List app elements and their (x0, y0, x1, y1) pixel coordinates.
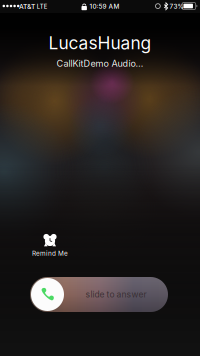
staticText: slide to answer (85, 289, 146, 300)
staticText: LucasHuang (48, 32, 151, 53)
staticText: 73% (169, 2, 183, 10)
button[interactable]: slide to answer (30, 277, 168, 312)
staticText: 10:59 AM (89, 2, 119, 10)
staticText: LTE (37, 3, 48, 10)
staticText: AT&T (19, 2, 35, 11)
staticText: CallKitDemo Audio… (56, 58, 143, 69)
button[interactable]: Remind Me (14, 232, 86, 259)
staticText: Remind Me (32, 249, 68, 257)
